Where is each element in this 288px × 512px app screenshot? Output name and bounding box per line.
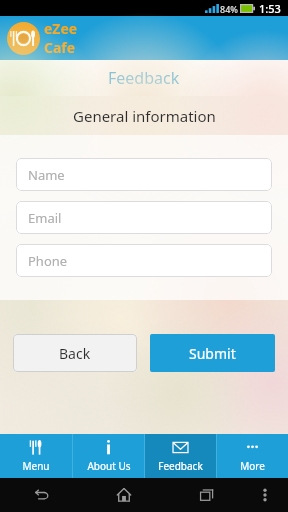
staticText: Email	[28, 209, 62, 227]
staticText: Back	[59, 344, 91, 363]
staticText: Submit	[189, 344, 236, 363]
staticText: Menu	[22, 459, 50, 473]
button[interactable]: Name	[16, 158, 272, 191]
staticText: More	[240, 459, 265, 473]
staticText: Feedback	[108, 67, 180, 89]
button[interactable]: Back	[24, 478, 58, 512]
staticText: About Us	[87, 459, 131, 473]
button[interactable]: Menu	[0, 434, 72, 478]
staticText: Cafe	[44, 38, 76, 57]
button[interactable]: About Us	[73, 434, 144, 478]
button[interactable]: Submit	[150, 334, 275, 372]
staticText: Feedback	[158, 459, 203, 473]
staticText: 1:53	[259, 1, 281, 16]
button[interactable]: Home	[107, 478, 141, 512]
button[interactable]: More	[217, 434, 288, 478]
button[interactable]: More options	[248, 478, 282, 512]
staticText: General information	[73, 106, 216, 126]
staticText: 84%	[220, 3, 238, 15]
button[interactable]: Recent apps	[190, 478, 224, 512]
button[interactable]: Phone	[16, 244, 272, 277]
button[interactable]: Email	[16, 201, 272, 234]
staticText: Name	[28, 166, 65, 184]
button[interactable]: Feedback	[145, 434, 216, 478]
staticText: Phone	[28, 252, 68, 270]
staticText: eZee	[44, 19, 78, 38]
button[interactable]: Back	[13, 334, 137, 372]
